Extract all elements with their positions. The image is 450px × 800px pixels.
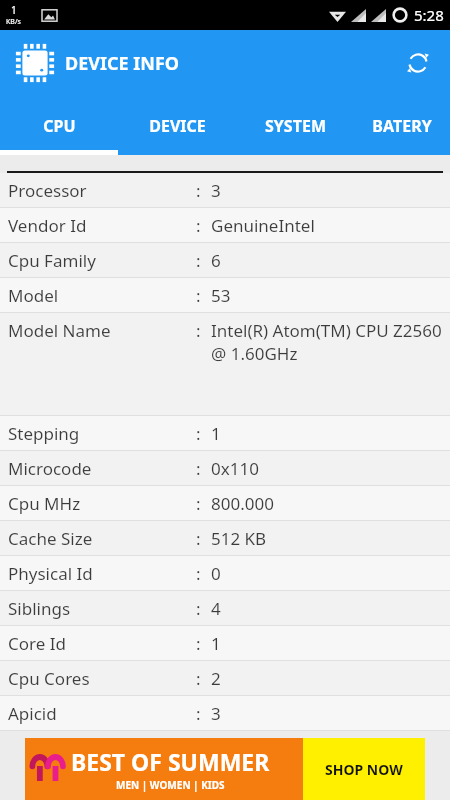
button[interactable]: DEVICE xyxy=(118,96,236,155)
staticText: GenuineIntel xyxy=(211,214,315,237)
staticText: Core Id xyxy=(8,632,66,655)
staticText: DEVICE INFO xyxy=(65,51,180,76)
staticText: Stepping xyxy=(8,422,80,445)
staticText: Cpu Family xyxy=(8,249,96,272)
staticText: Cpu Cores xyxy=(8,667,90,690)
staticText: 5:28 xyxy=(414,5,444,25)
button[interactable]: Model xyxy=(0,278,450,312)
staticText: CPU xyxy=(43,115,76,137)
button[interactable]: CPU xyxy=(0,96,118,155)
staticText: Cpu MHz xyxy=(8,492,81,515)
staticText: Physical Id xyxy=(8,562,93,585)
button[interactable]: Cache Size xyxy=(0,521,450,555)
staticText: : xyxy=(196,492,201,515)
staticText: 0 xyxy=(211,562,221,585)
button[interactable]: BATERY xyxy=(354,96,450,155)
staticText: 2 xyxy=(211,667,221,690)
button[interactable]: Microcode xyxy=(0,451,450,485)
staticText: Model Name xyxy=(8,319,111,342)
staticText: : xyxy=(196,284,201,307)
staticText: : xyxy=(196,702,201,725)
staticText: : xyxy=(196,527,201,550)
staticText: KB/s xyxy=(6,17,21,27)
staticText: 0x110 xyxy=(211,457,259,480)
staticText: Microcode xyxy=(8,457,92,480)
staticText: 3 xyxy=(211,179,221,202)
button[interactable]: BEST OF SUMMER xyxy=(25,738,425,800)
staticText: 53 xyxy=(211,284,231,307)
staticText: 512 KB xyxy=(211,527,267,550)
staticText: 4 xyxy=(211,597,221,620)
staticText: Apicid xyxy=(8,702,57,725)
staticText: Intel(R) Atom(TM) CPU Z2560 @ 1.60GHz xyxy=(211,319,442,365)
button[interactable]: Physical Id xyxy=(0,556,450,590)
staticText: : xyxy=(196,249,201,272)
staticText: BATERY xyxy=(372,115,432,137)
staticText: 800.000 xyxy=(211,492,274,515)
staticText: : xyxy=(196,667,201,690)
staticText: 3 xyxy=(211,702,221,725)
staticText: : xyxy=(196,457,201,480)
staticText: : xyxy=(196,319,201,342)
staticText: MEN | WOMEN | KIDS xyxy=(116,778,225,792)
staticText: Model xyxy=(8,284,59,307)
button[interactable]: SYSTEM xyxy=(236,96,354,155)
button[interactable]: Apicid xyxy=(0,696,450,730)
staticText: SHOP NOW xyxy=(325,760,403,779)
button[interactable]: Cpu Cores xyxy=(0,661,450,695)
staticText: : xyxy=(196,597,201,620)
staticText: DEVICE xyxy=(149,115,206,137)
staticText: Siblings xyxy=(8,597,71,620)
button[interactable]: Processor xyxy=(0,173,450,207)
staticText: Cache Size xyxy=(8,527,93,550)
staticText: : xyxy=(196,632,201,655)
staticText: BEST OF SUMMER xyxy=(71,746,270,777)
staticText: 1 xyxy=(211,422,221,445)
staticText: : xyxy=(196,179,201,202)
staticText: : xyxy=(196,422,201,445)
button[interactable]: Cpu Family xyxy=(0,243,450,277)
staticText: 1 xyxy=(11,3,17,17)
button[interactable]: Core Id xyxy=(0,626,450,660)
button[interactable]: Siblings xyxy=(0,591,450,625)
staticText: 6 xyxy=(211,249,221,272)
button[interactable]: Refresh xyxy=(398,43,438,83)
staticText: Processor xyxy=(8,179,87,202)
staticText: SYSTEM xyxy=(265,115,326,137)
staticText: : xyxy=(196,214,201,237)
button[interactable]: Model Name xyxy=(0,313,450,415)
staticText: Vendor Id xyxy=(8,214,87,237)
button[interactable]: Stepping xyxy=(0,416,450,450)
staticText: 1 xyxy=(211,632,221,655)
button[interactable]: Cpu MHz xyxy=(0,486,450,520)
staticText: : xyxy=(196,562,201,585)
button[interactable]: Vendor Id xyxy=(0,208,450,242)
